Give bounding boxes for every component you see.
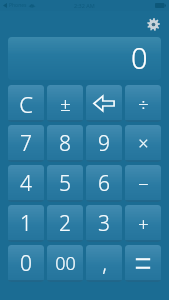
staticText: 2:32 AM bbox=[74, 2, 95, 9]
button[interactable]: Settings bbox=[144, 15, 162, 33]
staticText: , bbox=[102, 249, 107, 278]
staticText: 7 bbox=[20, 129, 32, 158]
button[interactable]: 00 bbox=[47, 245, 83, 282]
staticText: × bbox=[138, 131, 149, 156]
staticText: 6 bbox=[98, 169, 110, 198]
button[interactable]: + bbox=[125, 205, 161, 242]
button[interactable]: 5 bbox=[47, 165, 83, 202]
button[interactable]: Equals bbox=[125, 245, 161, 282]
button[interactable]: ± bbox=[47, 85, 83, 122]
button[interactable]: 6 bbox=[86, 165, 122, 202]
staticText: 5 bbox=[59, 169, 71, 198]
staticText: 1 bbox=[20, 209, 32, 238]
staticText: − bbox=[138, 171, 149, 197]
staticText: Phones bbox=[9, 2, 27, 9]
staticText: + bbox=[138, 211, 149, 237]
staticText: 3 bbox=[98, 209, 110, 238]
button[interactable]: 8 bbox=[47, 125, 83, 162]
staticText: 2 bbox=[59, 209, 71, 238]
staticText: 8 bbox=[59, 129, 71, 158]
staticText: 0 bbox=[131, 38, 148, 77]
button[interactable]: C bbox=[8, 85, 44, 122]
staticText: 0 bbox=[20, 249, 32, 278]
staticText: ± bbox=[60, 91, 71, 117]
button[interactable]: 0 bbox=[8, 37, 161, 80]
button[interactable]: − bbox=[125, 165, 161, 202]
button[interactable]: , bbox=[86, 245, 122, 282]
button[interactable]: 3 bbox=[86, 205, 122, 242]
button[interactable]: × bbox=[125, 125, 161, 162]
staticText: ÷ bbox=[138, 91, 149, 117]
staticText: 9 bbox=[98, 129, 110, 158]
button[interactable]: 1 bbox=[8, 205, 44, 242]
staticText: 00 bbox=[55, 251, 76, 276]
button[interactable]: 7 bbox=[8, 125, 44, 162]
button[interactable]: Backspace bbox=[86, 85, 122, 122]
staticText: 4 bbox=[20, 169, 32, 198]
button[interactable]: 9 bbox=[86, 125, 122, 162]
button[interactable]: 0 bbox=[8, 245, 44, 282]
staticText: C bbox=[19, 89, 33, 119]
button[interactable]: 4 bbox=[8, 165, 44, 202]
button[interactable]: 2 bbox=[47, 205, 83, 242]
button[interactable]: ÷ bbox=[125, 85, 161, 122]
